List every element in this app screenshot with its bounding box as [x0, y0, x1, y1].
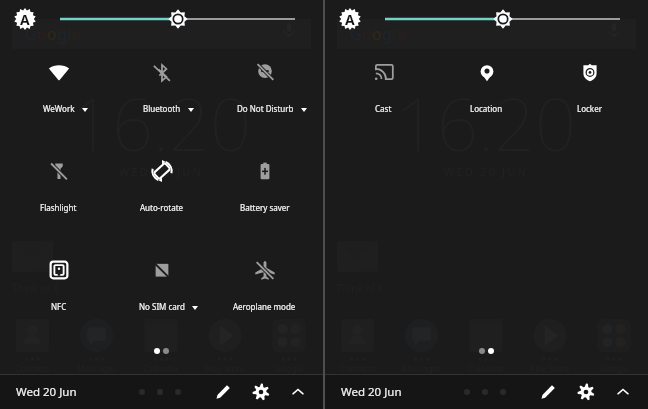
staticText: Battery saver	[240, 202, 290, 213]
button[interactable]: Edit	[214, 374, 537, 409]
staticText: Wed 20 Jun	[16, 384, 77, 400]
staticText: Auto-rotate	[140, 202, 184, 213]
button[interactable]: NFC	[7, 244, 110, 314]
staticText: Do Not Disturb	[237, 103, 294, 114]
staticText: A	[345, 10, 355, 29]
staticText: No SIM card	[139, 301, 185, 312]
staticText: Google	[275, 363, 304, 375]
staticText: o	[37, 23, 47, 45]
staticText: Flashlight	[40, 202, 77, 213]
button[interactable]: Collapse	[289, 374, 612, 409]
staticText: 16.20	[71, 74, 252, 172]
staticText: e	[72, 23, 82, 45]
staticText: Play Store	[205, 363, 245, 375]
staticText: 16.20	[396, 74, 577, 172]
staticText: Locker	[577, 103, 602, 114]
button[interactable]: Brightness	[325, 0, 648, 42]
staticText: A	[20, 10, 30, 29]
button[interactable]: Cast	[332, 46, 435, 116]
staticText: Messages	[402, 363, 442, 375]
button[interactable]: Auto-rotate	[110, 145, 213, 215]
staticText: e	[397, 23, 407, 45]
staticText: G	[25, 23, 37, 45]
staticText: o	[372, 23, 382, 45]
staticText: WED 20 JUN	[119, 164, 204, 179]
staticText: Calendar	[143, 363, 179, 375]
button[interactable]: Settings	[252, 374, 575, 409]
staticText: Contacts	[15, 363, 50, 375]
staticText: Play Store	[530, 363, 570, 375]
button[interactable]: Settings	[577, 374, 648, 409]
staticText: Wed 20 Jun	[341, 384, 402, 400]
staticText: g	[57, 23, 67, 45]
staticText: Cast	[375, 103, 392, 114]
staticText: o	[47, 23, 57, 45]
button[interactable]: Brightness	[0, 0, 323, 42]
staticText: Bluetooth	[143, 103, 181, 114]
staticText: Location	[470, 103, 503, 114]
staticText: Aeroplane mode	[233, 301, 296, 312]
button[interactable]: Location	[435, 46, 538, 116]
button[interactable]: No SIM card	[110, 244, 213, 314]
staticText: Contacts	[340, 363, 375, 375]
button[interactable]: Flashlight	[7, 145, 110, 215]
staticText: o	[362, 23, 372, 45]
button[interactable]: Collapse	[614, 374, 648, 409]
button[interactable]: WeWork	[7, 46, 110, 116]
button[interactable]: Auto brightness	[14, 8, 36, 30]
button[interactable]: Battery saver	[213, 145, 316, 215]
staticText: G	[350, 23, 362, 45]
staticText: WeWork	[43, 103, 75, 114]
button[interactable]: Locker	[538, 46, 641, 116]
staticText: Google	[600, 363, 629, 375]
button[interactable]: Aeroplane mode	[213, 244, 316, 314]
button[interactable]: Bluetooth	[110, 46, 213, 116]
button[interactable]: Edit	[539, 374, 648, 409]
button[interactable]: Auto brightness	[339, 8, 361, 30]
staticText: g	[382, 23, 392, 45]
button[interactable]: Do Not Disturb	[213, 46, 316, 116]
staticText: Messages	[77, 363, 117, 375]
staticText: Calendar	[468, 363, 504, 375]
staticText: NFC	[51, 301, 67, 312]
